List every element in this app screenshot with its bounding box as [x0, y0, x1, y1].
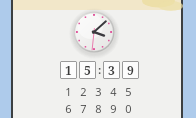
staticText: 2 — [80, 84, 87, 99]
staticText: 6 — [65, 101, 72, 116]
staticText: 0 — [125, 101, 132, 116]
staticText: 9 — [127, 62, 134, 78]
button[interactable]: 5 — [121, 84, 136, 99]
staticText: 8 — [95, 101, 102, 116]
staticText: 1 — [65, 84, 72, 99]
button[interactable]: 7 — [76, 101, 91, 116]
staticText: 9 — [110, 101, 117, 116]
button[interactable]: 3 — [91, 84, 106, 99]
button[interactable]: 1 — [60, 61, 77, 79]
staticText: 7 — [80, 101, 87, 116]
button[interactable]: 9 — [106, 101, 121, 116]
button[interactable]: 0 — [121, 101, 136, 116]
button[interactable]: 8 — [91, 101, 106, 116]
button[interactable]: 9 — [122, 61, 139, 79]
button[interactable]: 1 — [60, 84, 76, 99]
staticText: 3 — [108, 62, 115, 78]
button[interactable]: 5 — [79, 61, 96, 79]
staticText: 5 — [125, 84, 132, 99]
button[interactable]: Analog clock showing 15:39 — [72, 10, 116, 54]
button[interactable]: 2 — [76, 84, 91, 99]
button[interactable]: 4 — [106, 84, 121, 99]
staticText: : — [98, 62, 102, 77]
staticText: 1 — [65, 62, 72, 78]
button[interactable]: 6 — [60, 101, 76, 116]
staticText: 5 — [84, 62, 91, 78]
button[interactable]: 3 — [103, 61, 120, 79]
staticText: 3 — [95, 84, 102, 99]
staticText: 4 — [110, 84, 117, 99]
